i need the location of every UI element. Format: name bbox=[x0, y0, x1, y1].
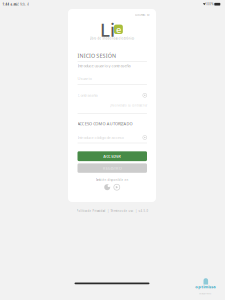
button[interactable]: ACCEDER bbox=[77, 151, 147, 161]
staticText: 100% bbox=[205, 2, 213, 6]
staticText: ¿Ha olvidado su contraseña? bbox=[110, 104, 147, 107]
button[interactable]: IDIOMA: ES bbox=[134, 12, 150, 18]
staticText: También disponible en bbox=[95, 178, 128, 182]
staticText: REGISTRO bbox=[103, 165, 122, 171]
button[interactable]: Información bbox=[143, 135, 147, 140]
staticText: INICIO SESIÓN bbox=[77, 52, 116, 59]
staticText: mié feb. 4 bbox=[14, 3, 29, 6]
button[interactable]: REGISTRO bbox=[77, 163, 147, 173]
button[interactable]: Descargar en Google Play bbox=[114, 184, 120, 190]
staticText: optimissa bbox=[195, 284, 215, 289]
staticText: Contraseña bbox=[77, 93, 97, 98]
staticText: ACCEDER bbox=[103, 153, 121, 159]
staticText: 1:44 a.m. bbox=[2, 3, 17, 6]
staticText: ACCESO COMO AUTORIZADO bbox=[77, 121, 133, 126]
staticText: IT Strategic Friends bbox=[198, 293, 211, 295]
staticText: Libro de Incidencias electrónico bbox=[89, 37, 134, 40]
staticText: Política de Privacidad | Términos de uso… bbox=[76, 209, 148, 213]
staticText: Li bbox=[100, 17, 115, 42]
staticText: Introduce usuario y contraseña bbox=[77, 63, 130, 68]
button[interactable]: Descargar en el App Store bbox=[104, 184, 110, 190]
staticText: Introduce código de acceso bbox=[77, 135, 123, 140]
staticText: e bbox=[116, 23, 121, 35]
staticText: IDIOMA: ES bbox=[135, 13, 149, 16]
button[interactable]: Mostrar contraseña bbox=[143, 93, 147, 97]
button[interactable]: ¿Ha olvidado su contraseña? bbox=[77, 104, 147, 107]
staticText: Usuario bbox=[77, 76, 91, 81]
